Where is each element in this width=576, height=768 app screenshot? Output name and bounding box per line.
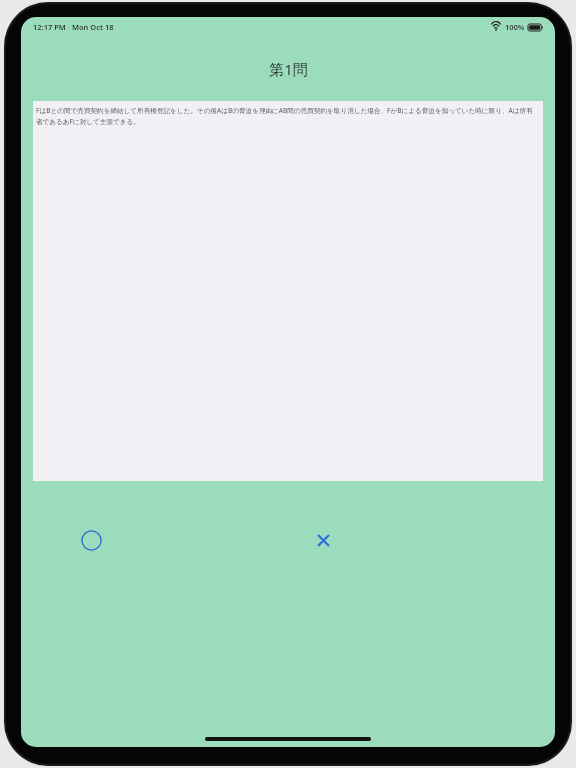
staticText: 100% — [505, 22, 525, 32]
staticText: 12:17 PM — [33, 22, 66, 32]
staticText: 第1問 — [269, 59, 308, 79]
staticText: Mon Oct 18 — [72, 22, 114, 32]
button[interactable]: Mark as false — [302, 519, 344, 561]
button[interactable]: FはBとの間で売買契約を締結して所有権登記をした。その後AはBの脅迫を理由にAB… — [33, 101, 543, 481]
staticText: FはBとの間で売買契約を締結して所有権登記をした。その後AはBの脅迫を理由にAB… — [36, 106, 539, 126]
button[interactable]: Mark as true — [70, 519, 112, 561]
